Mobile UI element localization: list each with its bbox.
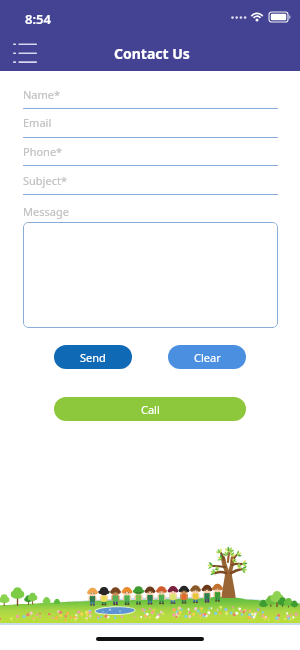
button[interactable]: Menu (3, 34, 47, 70)
staticText: Call (141, 402, 160, 417)
staticText: Message (23, 204, 69, 219)
button[interactable]: Call (54, 397, 246, 421)
button[interactable] (23, 222, 278, 328)
staticText: Phone* (23, 144, 63, 159)
staticText: Clear (194, 350, 221, 365)
button[interactable]: Send (54, 345, 132, 369)
staticText: Contact Us (114, 44, 190, 63)
button[interactable]: Clear (168, 345, 246, 369)
staticText: Email (23, 115, 52, 130)
staticText: Send (80, 350, 106, 365)
staticText: 8:54 (25, 10, 51, 28)
staticText: Subject* (23, 173, 67, 188)
staticText: Name* (23, 87, 61, 102)
